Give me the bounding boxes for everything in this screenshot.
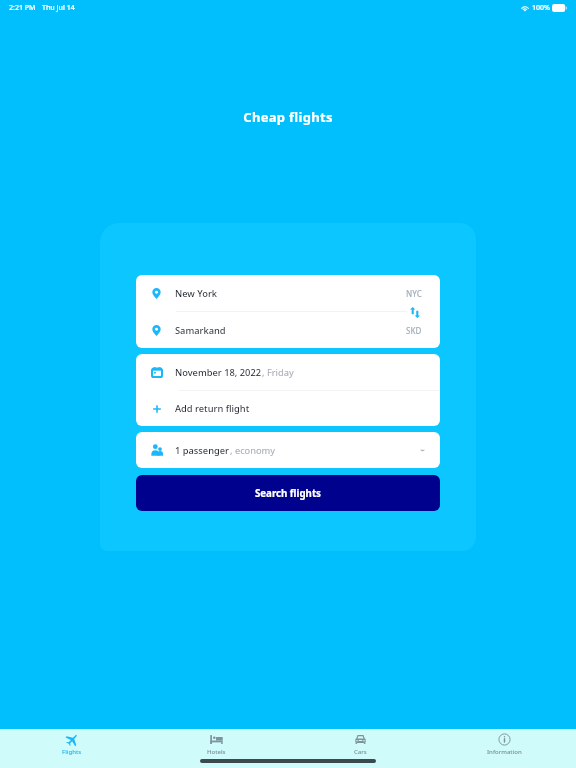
staticText: 100%	[532, 3, 550, 13]
button[interactable]: Hotels	[144, 729, 288, 759]
staticText: Search flights	[255, 487, 321, 500]
button[interactable]: Information	[432, 729, 576, 759]
button[interactable]: Flights	[0, 729, 144, 759]
staticText: SKD	[406, 325, 422, 336]
staticText: Samarkand	[175, 324, 226, 337]
button[interactable]: Swap origin and destination	[406, 303, 424, 321]
staticText: November 18, 2022	[175, 366, 262, 379]
button[interactable]: Add return flight	[136, 391, 440, 426]
staticText: , economy	[230, 444, 276, 457]
button[interactable]: November 18, 2022	[136, 354, 440, 390]
staticText: Cars	[354, 748, 367, 756]
staticText: Add return flight	[175, 402, 250, 415]
button[interactable]: Samarkand	[136, 312, 440, 348]
staticText: 2:21 PM	[9, 3, 36, 13]
button[interactable]: 1 passenger	[136, 432, 440, 468]
staticText: Cheap flights	[0, 108, 576, 126]
staticText: 1 passenger	[175, 444, 230, 457]
staticText: Information	[487, 748, 522, 756]
staticText: NYC	[406, 288, 422, 299]
staticText: Thu Jul 14	[42, 3, 75, 13]
button[interactable]: Search flights	[136, 475, 440, 511]
button[interactable]: Cars	[288, 729, 432, 759]
staticText: Flights	[62, 748, 82, 756]
staticText: New York	[175, 287, 218, 300]
staticText: , Friday	[262, 366, 294, 379]
button[interactable]: New York	[136, 275, 440, 311]
staticText: Hotels	[207, 748, 226, 756]
